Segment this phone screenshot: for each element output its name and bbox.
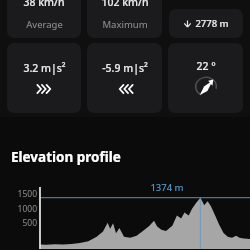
staticText: 22 ° <box>196 59 216 73</box>
staticText: 3.2 m|s² <box>23 61 66 75</box>
staticText: 102 km/h <box>101 0 149 9</box>
staticText: Elevation profile <box>11 148 121 166</box>
button[interactable]: Wind direction <box>168 43 243 113</box>
staticText: 500 <box>10 217 37 229</box>
button[interactable]: 102 km/h <box>87 0 162 38</box>
button[interactable]: 2778 m <box>169 9 243 38</box>
button[interactable]: 38 km/h <box>7 0 81 38</box>
staticText: 38 km/h <box>23 0 65 9</box>
staticText: 1374 m <box>150 181 184 194</box>
staticText: Average <box>26 18 63 31</box>
staticText: 1500 <box>10 188 37 200</box>
staticText: Maximum <box>102 18 148 31</box>
staticText: 1000 <box>10 203 37 215</box>
staticText: -5.9 m|s² <box>102 61 148 75</box>
staticText: 2778 m <box>195 17 229 30</box>
button[interactable]: -5.9 m|s² <box>87 43 162 113</box>
button[interactable]: 3.2 m|s² <box>7 43 81 113</box>
